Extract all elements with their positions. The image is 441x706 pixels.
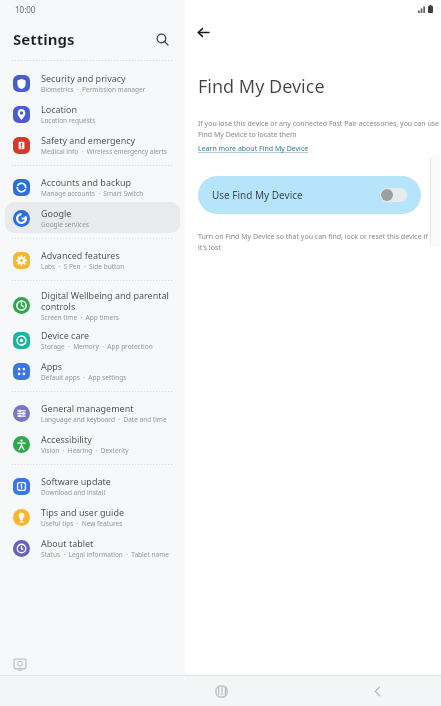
button[interactable]: Multi window xyxy=(9,654,31,676)
button[interactable]: Advanced features xyxy=(5,244,180,275)
staticText: Find My Device xyxy=(198,74,325,99)
staticText: Learn more about Find My Device xyxy=(198,144,309,154)
staticText: Status · Legal information · Tablet name xyxy=(41,550,169,559)
staticText: Settings xyxy=(13,29,75,49)
staticText: Location xyxy=(41,103,78,115)
staticText: Screen time · App timers xyxy=(41,313,119,322)
staticText: Security and privacy xyxy=(41,72,126,84)
staticText: Use Find My Device xyxy=(212,188,303,202)
button[interactable]: Safety and emergency xyxy=(5,129,180,160)
button[interactable]: Software update xyxy=(5,470,180,501)
staticText: Biometrics · Permission manager xyxy=(41,85,146,94)
button[interactable]: Home xyxy=(207,677,235,705)
button[interactable]: Learn more about Find My Device xyxy=(198,144,309,154)
button[interactable]: Back xyxy=(190,19,216,45)
button[interactable]: Device care xyxy=(5,324,180,355)
staticText: About tablet xyxy=(41,537,94,549)
staticText: Useful tips · New features xyxy=(41,519,123,528)
button[interactable]: Location xyxy=(5,98,180,129)
staticText: 10:00 xyxy=(15,4,36,15)
staticText: Google xyxy=(41,207,72,219)
staticText: Default apps · App settings xyxy=(41,373,127,382)
button[interactable]: Use Find My Device xyxy=(198,176,421,214)
staticText: Tips and user guide xyxy=(41,506,125,518)
staticText: Download and install xyxy=(41,488,106,497)
staticText: Google services xyxy=(41,220,89,229)
staticText: Medical info · Wireless emergency alerts xyxy=(41,147,167,156)
staticText: Software update xyxy=(41,475,111,487)
staticText: Accounts and backup xyxy=(41,176,132,188)
button[interactable]: Security and privacy xyxy=(5,67,180,98)
staticText: Labs · S Pen · Side button xyxy=(41,262,125,271)
button[interactable]: Tips and user guide xyxy=(5,501,180,532)
staticText: Digital Wellbeing and parental controls xyxy=(41,289,169,312)
button[interactable]: About tablet xyxy=(5,532,180,563)
button[interactable]: Google xyxy=(5,202,180,233)
button[interactable]: Digital Wellbeing and parental controls xyxy=(5,286,180,324)
button[interactable]: Accessibility xyxy=(5,428,180,459)
staticText: Location requests xyxy=(41,116,96,125)
button[interactable]: General management xyxy=(5,397,180,428)
button[interactable]: Recents xyxy=(208,677,236,705)
button[interactable]: Search xyxy=(149,26,175,52)
staticText: Device care xyxy=(41,329,90,341)
button[interactable]: Accounts and backup xyxy=(5,171,180,202)
button[interactable]: Back xyxy=(363,677,391,705)
staticText: Safety and emergency xyxy=(41,134,136,146)
staticText: Turn on Find My Device so that you can f… xyxy=(198,232,435,252)
staticText: If you lose this device or any connected… xyxy=(198,119,440,139)
staticText: Manage accounts · Smart Switch xyxy=(41,189,144,198)
staticText: Storage · Memory · App protection xyxy=(41,342,153,351)
staticText: General management xyxy=(41,402,134,414)
staticText: Advanced features xyxy=(41,249,120,261)
staticText: Accessibility xyxy=(41,433,92,445)
button[interactable] xyxy=(380,188,407,202)
button[interactable]: Apps xyxy=(5,355,180,386)
staticText: Vision · Hearing · Dexterity xyxy=(41,446,129,455)
staticText: Apps xyxy=(41,360,63,372)
staticText: Language and keyboard · Date and time xyxy=(41,415,167,424)
